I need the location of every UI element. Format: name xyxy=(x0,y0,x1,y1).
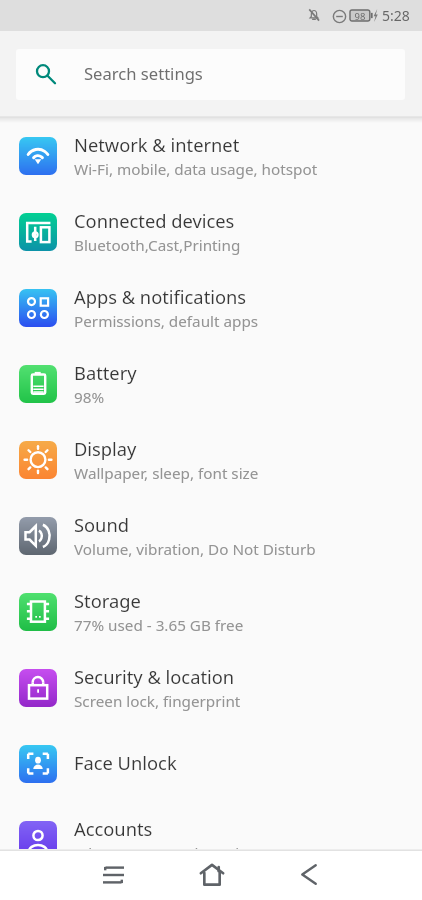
staticText: Wallpaper, sleep, font size xyxy=(74,463,259,484)
staticText: Accounts xyxy=(74,816,153,841)
staticText: Connected devices xyxy=(74,208,235,233)
staticText: Apps & notifications xyxy=(74,284,247,309)
staticText: Face Unlock xyxy=(74,750,177,775)
staticText: Sound xyxy=(74,512,129,537)
button[interactable]: Sound xyxy=(0,498,422,574)
staticText: Battery xyxy=(74,360,137,385)
staticText: Display xyxy=(74,436,137,461)
staticText: 98 xyxy=(350,10,370,21)
staticText: 77% used - 3.65 GB free xyxy=(74,615,244,636)
button[interactable]: Battery xyxy=(0,346,422,422)
staticText: 98% xyxy=(74,387,105,408)
button[interactable]: Connected devices xyxy=(0,194,422,270)
staticText: Bluetooth,Cast,Printing xyxy=(74,235,241,256)
staticText: WhatsApp, Google, Twitter xyxy=(74,843,266,849)
button[interactable]: Home xyxy=(188,851,235,898)
staticText: Screen lock, fingerprint xyxy=(74,691,241,712)
button[interactable]: Search settings xyxy=(16,49,405,100)
button[interactable]: Display xyxy=(0,422,422,498)
button[interactable]: Face Unlock xyxy=(0,726,422,802)
staticText: Network & internet xyxy=(74,132,240,157)
staticText: Permissions, default apps xyxy=(74,311,259,332)
staticText: Volume, vibration, Do Not Disturb xyxy=(74,539,316,560)
button[interactable]: Accounts xyxy=(0,802,422,849)
staticText: Security & location xyxy=(74,664,235,689)
staticText: Storage xyxy=(74,588,141,613)
staticText: 5:28 xyxy=(382,6,410,25)
staticText: Search settings xyxy=(84,62,203,85)
staticText: Wi-Fi, mobile, data usage, hotspot xyxy=(74,159,318,180)
button[interactable]: Network & internet xyxy=(0,118,422,194)
button[interactable]: Apps & notifications xyxy=(0,270,422,346)
button[interactable]: Storage xyxy=(0,574,422,650)
button[interactable]: Security & location xyxy=(0,650,422,726)
button[interactable]: Back xyxy=(285,851,332,898)
button[interactable]: Recent apps xyxy=(90,851,137,898)
